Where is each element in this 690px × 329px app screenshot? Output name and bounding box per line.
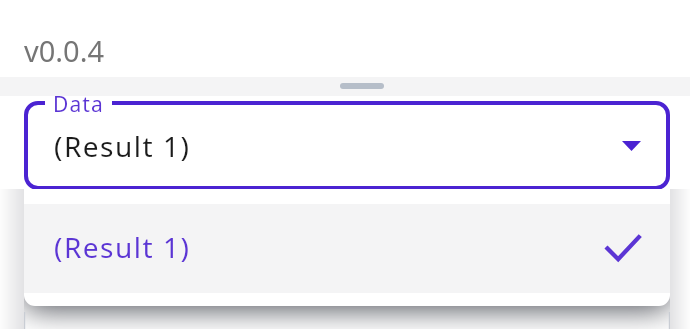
staticText: (Result 1) bbox=[54, 228, 191, 266]
other: Show options bbox=[622, 141, 641, 151]
button[interactable]: (Result 1) bbox=[24, 101, 670, 190]
button[interactable]: (Result 1) bbox=[24, 204, 670, 293]
staticText: Data bbox=[53, 90, 104, 119]
other: Selected bbox=[605, 237, 643, 267]
staticText: (Result 1) bbox=[54, 127, 191, 165]
staticText: v0.0.4 bbox=[24, 31, 105, 70]
